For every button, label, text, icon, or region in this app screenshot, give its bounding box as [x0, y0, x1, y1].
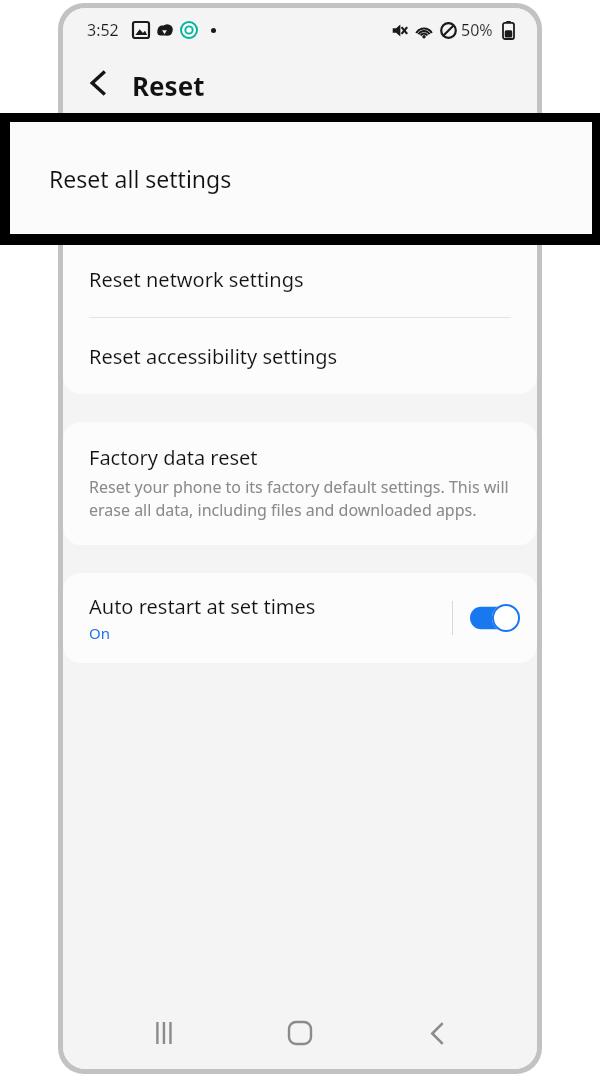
staticText: Reset all settings	[49, 163, 232, 194]
button[interactable]: Auto restart toggle	[453, 573, 537, 663]
staticText: Factory data reset	[89, 444, 258, 471]
staticText: 3:52	[87, 19, 119, 41]
button[interactable]: Back	[75, 60, 121, 106]
staticText: On	[89, 623, 110, 643]
staticText: Reset all settings	[89, 189, 248, 216]
button[interactable]: Auto restart at set times	[63, 573, 537, 663]
staticText: Reset network settings	[89, 266, 304, 293]
staticText: Reset your phone to its factory default …	[89, 476, 511, 521]
staticText: Auto restart at set times	[89, 593, 316, 620]
button[interactable]: Reset accessibility settings	[63, 318, 537, 394]
button[interactable]: Factory data reset	[63, 422, 537, 545]
staticText: 50%	[461, 19, 493, 41]
staticText: Reset accessibility settings	[89, 343, 338, 370]
button[interactable]: Recents	[141, 1009, 189, 1057]
button[interactable]: Reset all settings	[63, 164, 537, 240]
button[interactable]: Back	[413, 1009, 461, 1057]
button[interactable]: Home	[276, 1009, 324, 1057]
button[interactable]: Reset all settings	[10, 122, 592, 234]
button[interactable]: Reset network settings	[63, 241, 537, 317]
staticText: Reset	[132, 68, 205, 103]
